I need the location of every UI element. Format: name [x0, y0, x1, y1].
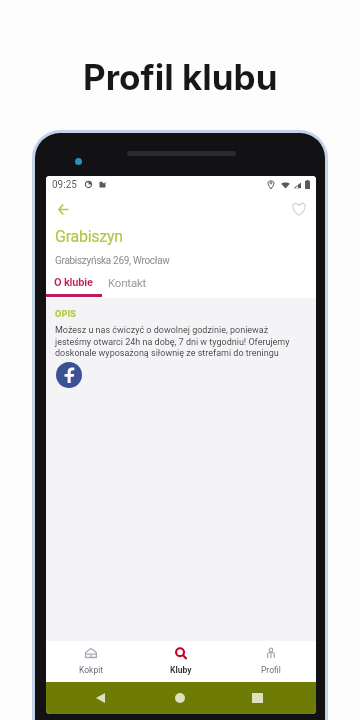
staticText: O klubie: [54, 276, 93, 289]
staticText: OPIS: [55, 309, 76, 320]
button[interactable]: Home: [164, 682, 196, 714]
button[interactable]: Facebook: [56, 362, 82, 388]
button[interactable]: Add to favorites: [287, 197, 311, 221]
staticText: 09:25: [52, 179, 77, 191]
staticText: Grabiszyn: [55, 227, 123, 246]
staticText: Kokpit: [79, 665, 103, 675]
staticText: Profil: [261, 665, 281, 675]
staticText: Kontakt: [108, 276, 147, 289]
button[interactable]: Back: [51, 197, 75, 221]
staticText: Kluby: [170, 665, 192, 675]
button[interactable]: Kontakt: [102, 276, 158, 293]
button[interactable]: Recents: [241, 682, 273, 714]
button[interactable]: Kluby: [136, 641, 226, 682]
staticText: Możesz u nas ćwiczyć o dowolnej godzinie…: [55, 325, 298, 358]
button[interactable]: O klubie: [46, 276, 102, 293]
button[interactable]: Profil: [226, 641, 316, 682]
button[interactable]: Back: [84, 682, 116, 714]
staticText: Grabiszyńska 269, Wrocław: [55, 255, 170, 267]
button[interactable]: Kokpit: [46, 641, 136, 682]
staticText: Profil klubu: [83, 56, 278, 98]
